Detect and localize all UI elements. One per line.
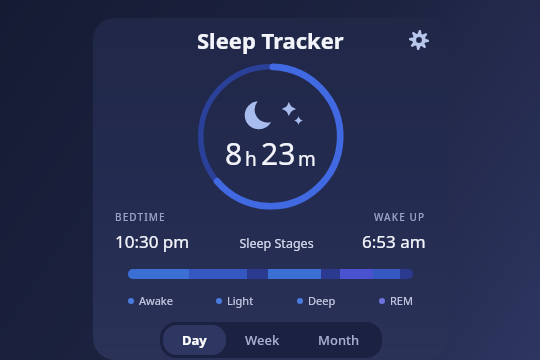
staticText: Awake — [139, 293, 173, 308]
button[interactable]: Light — [214, 291, 256, 310]
staticText: Sleep Stages — [239, 235, 314, 252]
button[interactable]: Month — [299, 325, 379, 355]
staticText: Sleep Tracker — [197, 25, 344, 55]
staticText: Deep — [308, 293, 336, 308]
staticText: 10:30 pm — [115, 230, 190, 253]
staticText: WAKE UP — [374, 210, 426, 224]
staticText: 6:53 am — [362, 230, 426, 253]
staticText: h — [245, 146, 257, 172]
staticText: 8 — [225, 133, 243, 174]
staticText: m — [298, 146, 316, 172]
button[interactable]: Week — [226, 325, 299, 355]
button[interactable]: REM — [377, 291, 415, 310]
button[interactable]: Deep — [295, 291, 338, 310]
staticText: BEDTIME — [115, 210, 166, 224]
staticText: Day — [182, 331, 207, 349]
button[interactable] — [128, 269, 413, 279]
staticText: Week — [245, 331, 280, 349]
staticText: Light — [227, 293, 254, 308]
button[interactable]: Awake — [126, 291, 175, 310]
button[interactable]: Day — [163, 325, 226, 355]
staticText: Month — [318, 331, 360, 349]
button[interactable]: Settings — [404, 25, 434, 55]
staticText: REM — [390, 293, 413, 308]
staticText: 23 — [261, 133, 296, 174]
